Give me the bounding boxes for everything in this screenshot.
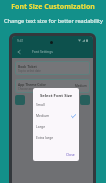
button[interactable]: Colour swatch bbox=[80, 95, 90, 105]
staticText: Choose accent bbox=[18, 87, 38, 91]
button[interactable]: Large bbox=[36, 121, 76, 132]
button[interactable]: App Theme Color bbox=[15, 79, 90, 93]
button[interactable]: Book Ticket bbox=[15, 61, 90, 75]
staticText: Medium bbox=[75, 84, 87, 88]
staticText: Medium bbox=[36, 113, 50, 118]
button[interactable]: Extra large bbox=[36, 132, 76, 143]
button[interactable]: Close bbox=[66, 152, 75, 157]
staticText: 9:41 bbox=[17, 39, 24, 43]
staticText: Font Settings bbox=[32, 49, 53, 54]
button[interactable]: Colour swatch bbox=[37, 95, 47, 105]
button[interactable]: Colour swatch bbox=[15, 95, 25, 105]
button[interactable]: Medium bbox=[36, 110, 76, 121]
staticText: Book Ticket bbox=[18, 64, 37, 69]
staticText: Extra large bbox=[36, 135, 54, 140]
staticText: Select Font Size bbox=[40, 93, 73, 99]
button[interactable]: Colour swatch bbox=[58, 95, 68, 105]
button[interactable]: Small bbox=[36, 99, 76, 110]
staticText: Small bbox=[36, 102, 45, 107]
staticText: Large bbox=[36, 124, 46, 129]
staticText: Tap to select date bbox=[18, 69, 41, 73]
staticText: Font Size Customization bbox=[11, 2, 95, 12]
staticText: App Theme Color bbox=[18, 82, 46, 87]
staticText: Change text size for better readability bbox=[4, 17, 103, 25]
button[interactable]: Back bbox=[15, 48, 22, 55]
staticText: Close bbox=[66, 152, 75, 157]
